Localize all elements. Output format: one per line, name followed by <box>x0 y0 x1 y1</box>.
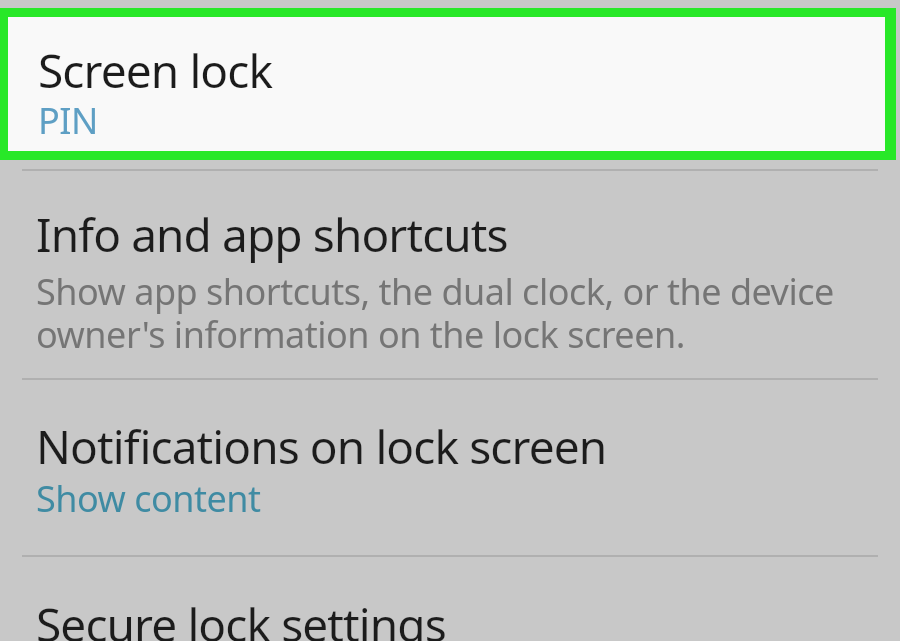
button[interactable]: Info and app shortcuts <box>0 171 900 379</box>
button[interactable]: Secure lock settings <box>0 557 900 641</box>
staticText: Screen lock <box>38 39 273 102</box>
button[interactable]: Screen lock <box>0 8 896 160</box>
staticText: Show app shortcuts, the dual clock, or t… <box>36 267 834 359</box>
staticText: PIN <box>38 96 98 145</box>
staticText: Notifications on lock screen <box>36 415 607 478</box>
staticText: Show content <box>36 474 261 523</box>
staticText: Info and app shortcuts <box>36 203 508 266</box>
staticText: Secure lock settings <box>36 593 446 641</box>
button[interactable]: Notifications on lock screen <box>0 380 900 556</box>
